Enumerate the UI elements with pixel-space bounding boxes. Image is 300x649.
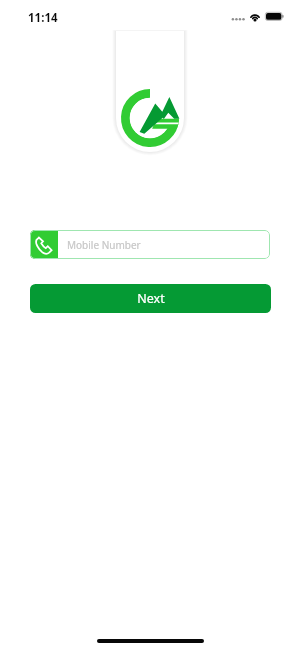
button[interactable]: Next	[30, 284, 271, 313]
staticText: 11:14	[28, 10, 58, 26]
button[interactable]: Phone	[30, 230, 270, 259]
other: Phone	[30, 230, 58, 259]
staticText: Mobile Number	[67, 238, 141, 252]
staticText: Next	[137, 290, 165, 307]
